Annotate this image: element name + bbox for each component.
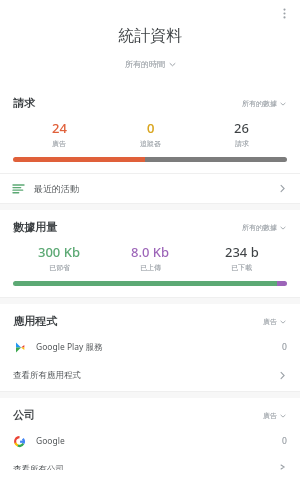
button[interactable]: More options <box>273 2 295 24</box>
staticText: 所有的數據 <box>242 223 277 232</box>
button[interactable]: 查看所有應用程式 <box>0 361 300 391</box>
staticText: 26 <box>234 119 249 137</box>
staticText: 查看所有應用程式 <box>13 370 81 381</box>
staticText: 公司 <box>13 408 35 422</box>
staticText: 0 <box>147 119 155 137</box>
staticText: 已下載 <box>231 263 252 272</box>
staticText: 300 Kb <box>38 243 80 261</box>
staticText: 查看所有公司 <box>13 464 64 470</box>
staticText: 24 <box>52 119 67 137</box>
staticText: 廣告 <box>263 411 277 420</box>
button[interactable]: 所有的數據 <box>239 97 289 110</box>
staticText: Google <box>36 435 65 447</box>
button[interactable]: Google <box>0 427 300 455</box>
staticText: 所有的數據 <box>242 99 277 108</box>
staticText: Google Play 服務 <box>36 341 103 353</box>
button[interactable]: 最近的活動 <box>0 174 300 203</box>
button[interactable]: 廣告 <box>260 409 289 422</box>
staticText: 數據用量 <box>13 220 57 234</box>
button[interactable]: Google Play 服務 <box>0 333 300 361</box>
staticText: 已節省 <box>49 263 70 272</box>
staticText: 234 b <box>225 243 259 261</box>
staticText: 請求 <box>235 139 249 148</box>
button[interactable]: 所有的時間 <box>119 57 182 71</box>
staticText: 已上傳 <box>140 263 161 272</box>
button[interactable]: 廣告 <box>260 315 289 328</box>
staticText: 8.0 Kb <box>131 243 170 261</box>
staticText: 追蹤器 <box>140 139 161 148</box>
staticText: 所有的時間 <box>125 59 165 69</box>
staticText: 請求 <box>13 96 35 110</box>
button[interactable]: 查看所有公司 <box>0 455 300 480</box>
staticText: 最近的活動 <box>34 183 79 194</box>
staticText: 0 <box>282 341 287 353</box>
button[interactable]: 所有的數據 <box>239 221 289 234</box>
staticText: 廣告 <box>263 317 277 326</box>
staticText: 統計資料 <box>118 26 182 46</box>
staticText: 廣告 <box>52 139 66 148</box>
staticText: 應用程式 <box>13 314 57 328</box>
staticText: 0 <box>282 435 287 447</box>
